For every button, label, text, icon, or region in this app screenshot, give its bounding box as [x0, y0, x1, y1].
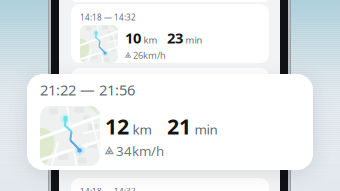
staticText: min [185, 34, 202, 46]
button[interactable]: 21:22 — 21:56 [27, 74, 313, 170]
button[interactable]: 14:18 — 14:32 [71, 68, 269, 127]
staticText: 8 [125, 92, 133, 111]
staticText: 21:22 — 21:56 [40, 80, 135, 99]
staticText: 26km/h [133, 49, 166, 61]
staticText: 23 [167, 28, 183, 47]
staticText: km [132, 120, 151, 138]
staticText: 14:18 — 14:32 [80, 186, 136, 191]
button[interactable]: 14:18 — 14:32 [71, 178, 269, 191]
staticText: 24km/h [133, 113, 166, 125]
staticText: 34km/h [116, 142, 164, 160]
staticText: 14:18 — 14:32 [80, 12, 136, 23]
staticText: 12 [105, 112, 129, 140]
staticText: 10 [125, 28, 141, 47]
staticText: 21 [167, 112, 191, 140]
staticText: 14:18 — 14:32 [80, 76, 136, 87]
button[interactable]: 14:18 — 14:32 [71, 4, 269, 63]
staticText: km [143, 34, 157, 46]
staticText: min [194, 120, 217, 138]
